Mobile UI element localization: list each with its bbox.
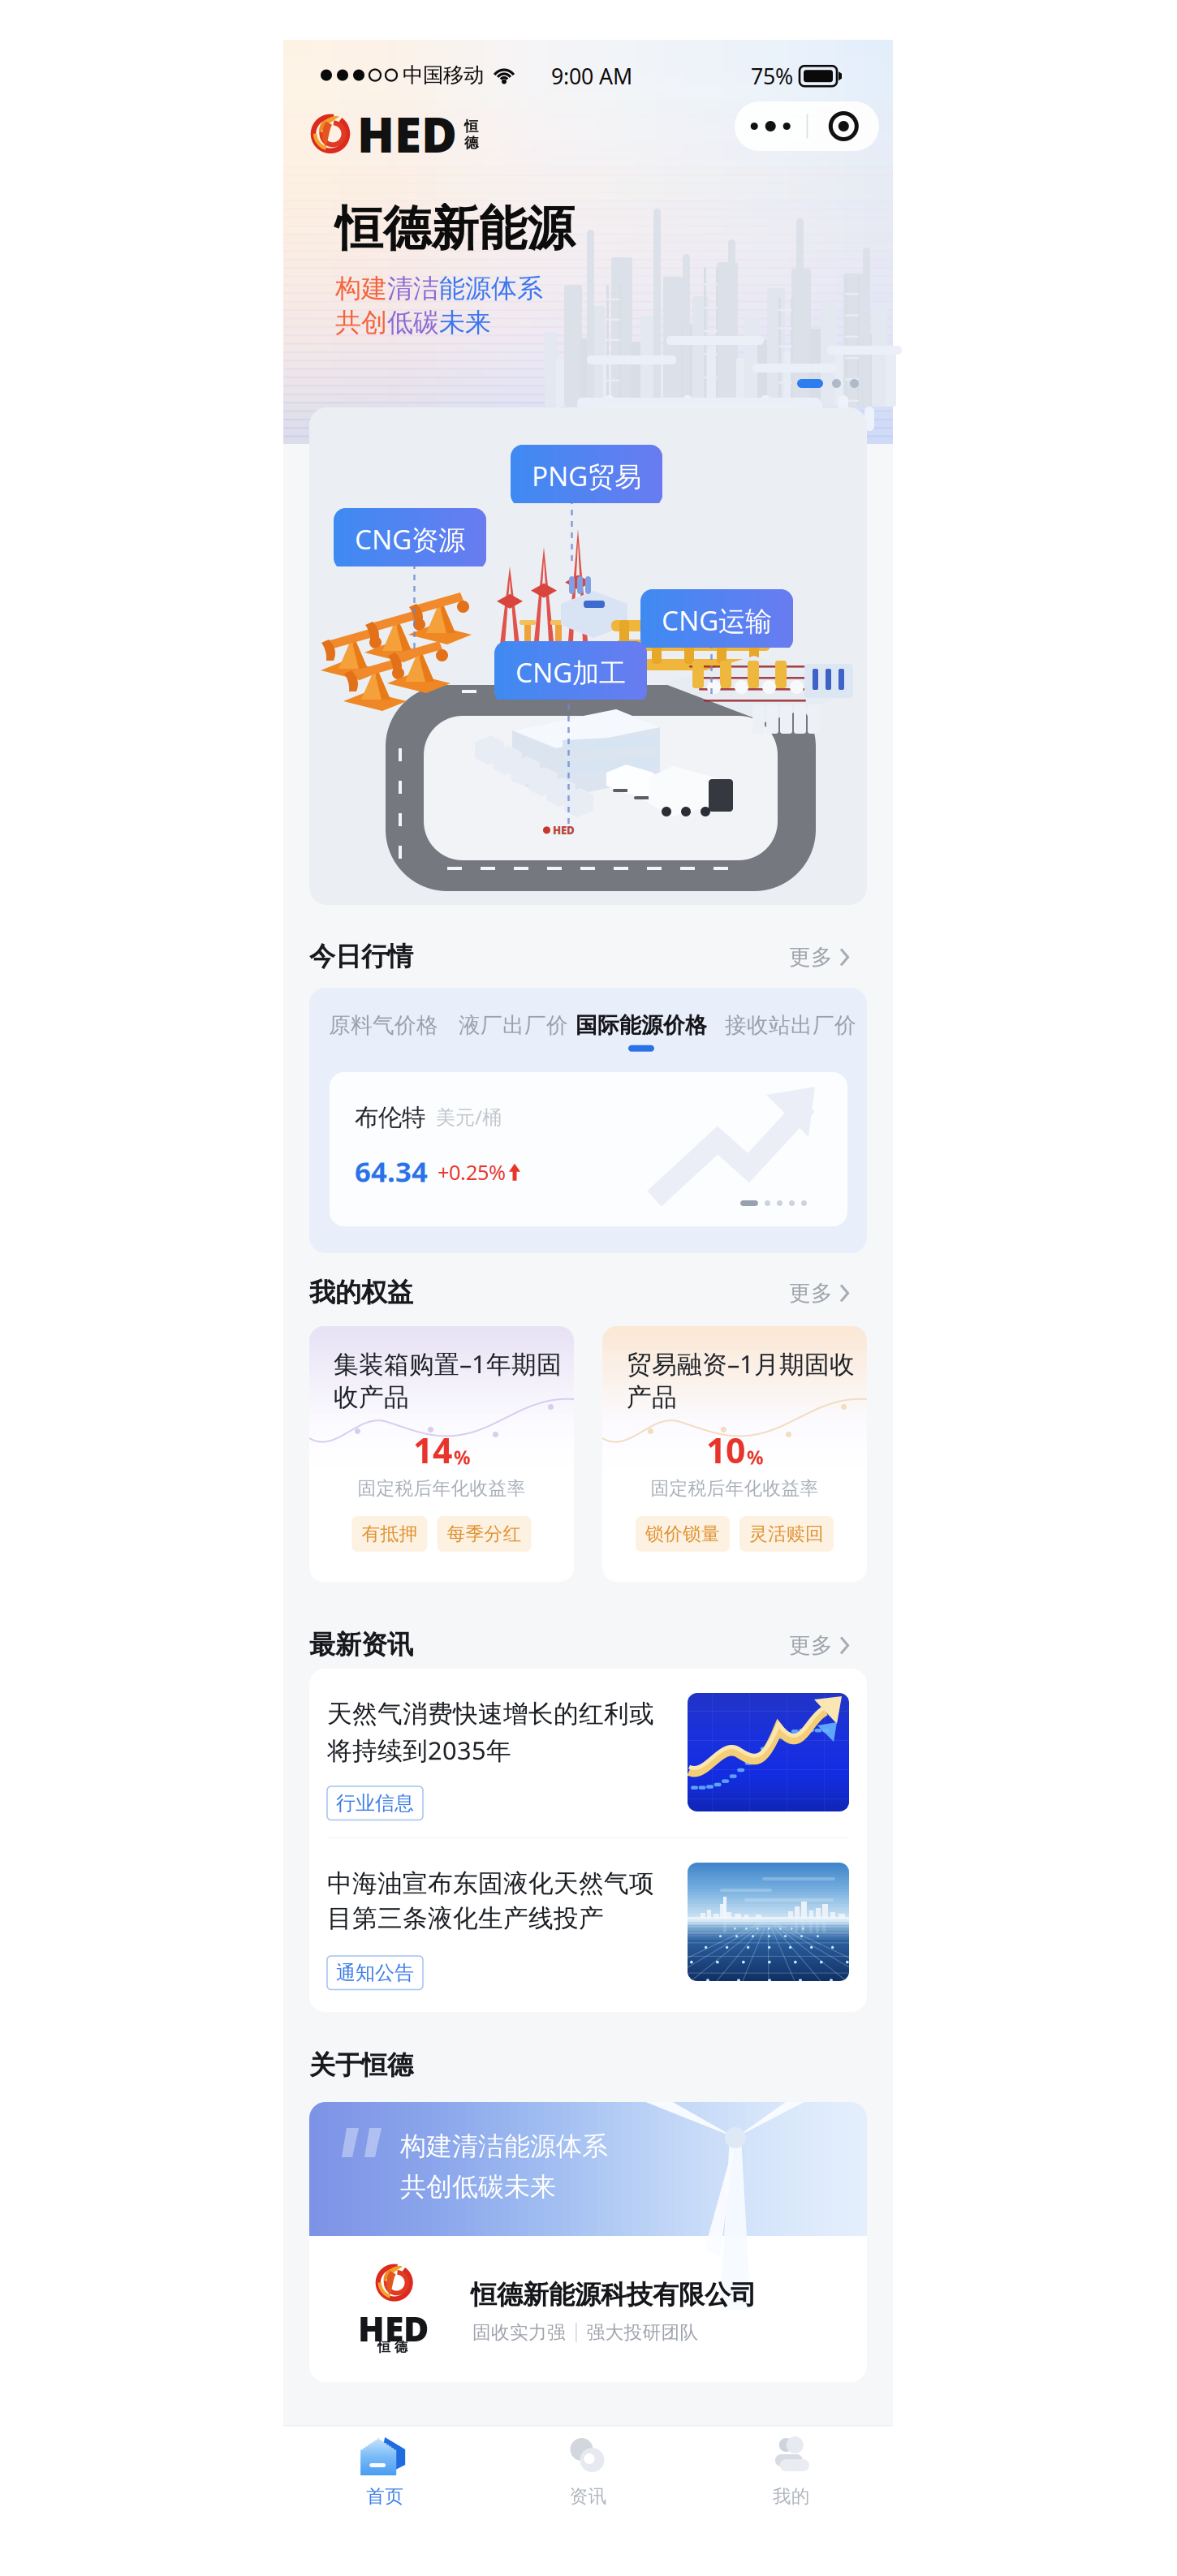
button[interactable]: 国际能源价格: [576, 1012, 707, 1052]
button[interactable]: CNG资源: [334, 508, 486, 570]
staticText: 灵活赎回: [749, 1523, 824, 1545]
staticText: HED: [553, 823, 575, 837]
staticText: 清洁: [387, 273, 439, 305]
staticText: HED: [357, 101, 457, 166]
staticText: 未来: [439, 307, 491, 339]
staticText: 德: [464, 134, 478, 151]
staticText: 收产品: [334, 1382, 409, 1413]
button[interactable]: 天然气消费快速增长的红利或: [309, 1669, 867, 1836]
button[interactable]: CNG加工: [494, 641, 647, 703]
button[interactable]: More options: [734, 101, 807, 151]
staticText: 恒 德: [377, 2339, 407, 2355]
button[interactable]: PNG贸易: [511, 445, 662, 507]
staticText: 恒德新能源: [335, 200, 575, 258]
staticText: 75%: [751, 62, 793, 90]
staticText: 今日行情: [309, 941, 413, 973]
staticText: 14: [413, 1427, 452, 1473]
staticText: 恒德新能源科技有限公司: [471, 2279, 757, 2311]
staticText: 固定税后年化收益率: [651, 1477, 819, 1500]
button[interactable]: 首页: [283, 2425, 486, 2550]
staticText: 每季分红: [447, 1523, 522, 1545]
staticText: 能源体系: [439, 273, 543, 305]
staticText: 美元/桶: [436, 1104, 502, 1130]
button[interactable]: 液厂出厂价: [459, 1012, 568, 1052]
staticText: 目第三条液化生产线投产: [327, 1903, 604, 1934]
staticText: 64.34: [355, 1152, 428, 1190]
staticText: 首页: [366, 2485, 404, 2508]
staticText: 中国移动: [403, 62, 484, 88]
staticText: 共创低碳未来: [400, 2171, 556, 2203]
staticText: 强大投研团队: [587, 2321, 699, 2344]
staticText: %: [747, 1445, 763, 1470]
staticText: 更多: [789, 1280, 833, 1307]
button[interactable]: 贸易融资–1月期固收: [602, 1326, 867, 1582]
staticText: 共创: [335, 307, 387, 339]
button[interactable]: 更多: [783, 1627, 856, 1664]
staticText: 锁价锁量: [645, 1523, 720, 1545]
staticText: %: [454, 1445, 470, 1470]
staticText: 国际能源价格: [576, 1012, 707, 1039]
staticText: 产品: [627, 1382, 677, 1413]
staticText: 资讯: [569, 2485, 607, 2508]
staticText: 最新资讯: [309, 1629, 413, 1661]
staticText: 恒: [464, 118, 478, 135]
button[interactable]: 接收站出厂价: [725, 1012, 856, 1052]
staticText: 我的: [773, 2485, 810, 2508]
staticText: 固收实力强: [472, 2321, 566, 2344]
staticText: 液厂出厂价: [459, 1012, 568, 1039]
staticText: CNG运输: [662, 602, 772, 638]
staticText: 行业信息: [336, 1791, 414, 1815]
staticText: 原料气价格: [329, 1012, 438, 1039]
button[interactable]: 更多: [783, 939, 856, 975]
staticText: HED: [358, 2305, 429, 2351]
button[interactable]: 更多: [783, 1275, 856, 1311]
staticText: 贸易融资–1月期固收: [627, 1347, 855, 1380]
staticText: 集装箱购置–1年期固: [334, 1347, 562, 1380]
button[interactable]: CNG运输: [640, 589, 793, 651]
button[interactable]: 中海油宣布东固液化天然气项: [309, 1838, 867, 2005]
staticText: 有抵押: [362, 1523, 418, 1545]
button[interactable]: 原料气价格: [329, 1012, 438, 1052]
staticText: 固定税后年化收益率: [358, 1477, 526, 1500]
staticText: 构建清洁能源体系: [400, 2130, 608, 2162]
staticText: 更多: [789, 1632, 833, 1659]
button[interactable]: 我的: [690, 2425, 893, 2550]
staticText: CNG资源: [355, 521, 465, 557]
staticText: 通知公告: [336, 1961, 414, 1985]
button[interactable]: 资讯: [486, 2425, 690, 2550]
staticText: CNG加工: [515, 654, 626, 690]
button[interactable]: 集装箱购置–1年期固: [309, 1326, 574, 1582]
staticText: 我的权益: [309, 1277, 413, 1309]
staticText: 布伦特: [355, 1103, 425, 1132]
staticText: 中海油宣布东固液化天然气项: [327, 1868, 654, 1899]
staticText: 构建: [335, 273, 387, 305]
staticText: 将持续到2035年: [327, 1734, 511, 1767]
button[interactable]: Close mini program: [808, 101, 879, 151]
staticText: 天然气消费快速增长的红利或: [327, 1699, 654, 1729]
staticText: 接收站出厂价: [725, 1012, 856, 1039]
staticText: 9:00 AM: [551, 62, 632, 90]
staticText: 关于恒德: [309, 2049, 413, 2081]
staticText: 低碳: [387, 307, 439, 339]
staticText: 更多: [789, 944, 833, 971]
staticText: PNG贸易: [532, 458, 641, 494]
staticText: +0.25%: [438, 1158, 506, 1186]
staticText: 10: [706, 1427, 745, 1473]
